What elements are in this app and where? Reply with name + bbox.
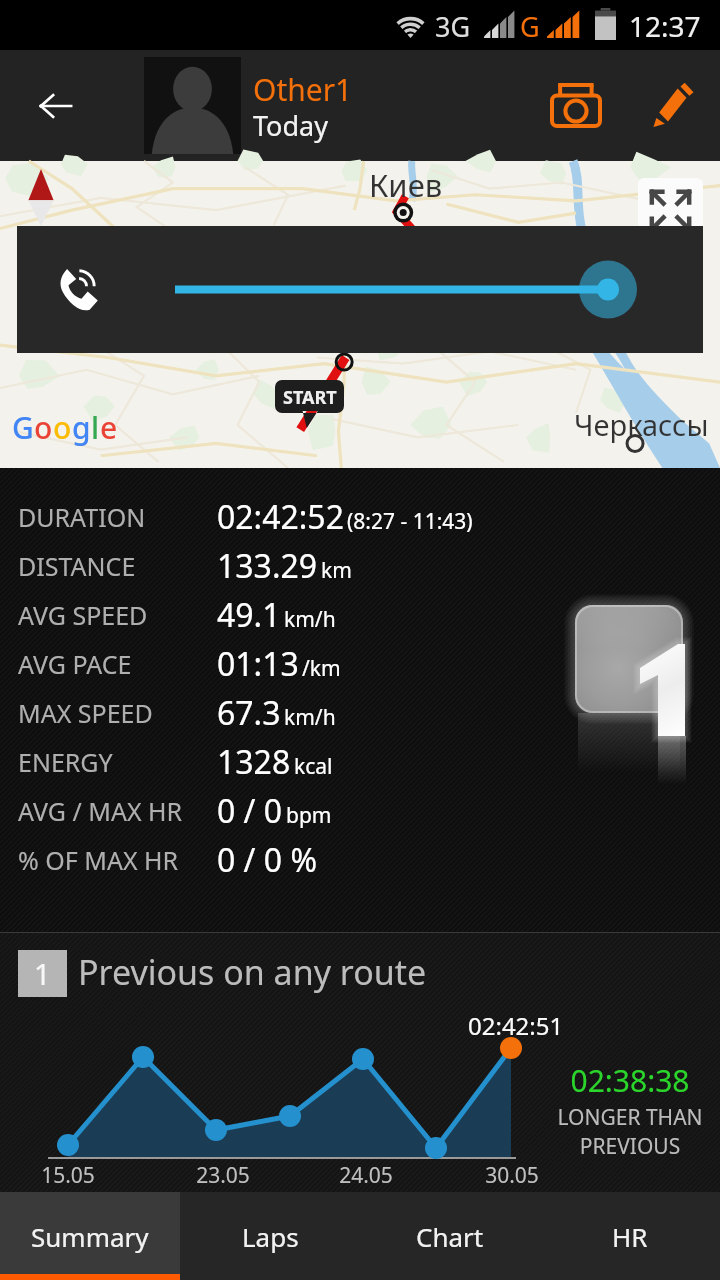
staticText: 67.3 — [217, 691, 281, 735]
staticText: Киев — [369, 164, 443, 206]
button[interactable]: Edit — [628, 50, 720, 161]
staticText: Other1 — [253, 69, 353, 110]
staticText: MAX SPEED — [18, 696, 153, 730]
staticText: Черкассы — [574, 405, 709, 444]
staticText: g — [72, 407, 91, 448]
staticText: 1328 — [217, 740, 291, 784]
staticText: DURATION — [18, 500, 146, 534]
staticText: DISTANCE — [18, 549, 136, 583]
staticText: AVG / MAX HR — [18, 794, 183, 828]
staticText: G — [520, 8, 540, 45]
button[interactable]: Fullscreen — [638, 178, 703, 243]
staticText: 30.05 — [478, 1161, 546, 1190]
staticText: HR — [612, 1219, 648, 1254]
staticText: e — [100, 407, 118, 448]
staticText: 3G — [435, 8, 471, 45]
staticText: km/h — [284, 703, 336, 732]
staticText: 0 / 0 % — [217, 838, 318, 882]
staticText: Today — [253, 107, 328, 144]
staticText: AVG SPEED — [18, 598, 148, 632]
button[interactable]: Chart — [360, 1192, 540, 1280]
staticText: 01:13 — [217, 642, 299, 686]
staticText: o — [53, 407, 72, 448]
staticText: 02:42:51 — [468, 1009, 564, 1042]
staticText: AVG PACE — [18, 647, 132, 681]
staticText: 02:38:38 — [570, 1060, 690, 1101]
button[interactable]: Summary — [0, 1192, 180, 1280]
staticText: /km — [302, 654, 341, 683]
staticText: 24.05 — [332, 1161, 400, 1190]
staticText: o — [34, 407, 53, 448]
staticText: l — [91, 407, 100, 448]
staticText: kcal — [294, 752, 333, 781]
staticText: 49.1 — [217, 593, 281, 637]
staticText: Previous on any route — [78, 949, 427, 995]
staticText: km/h — [284, 605, 336, 634]
button[interactable]: Laps — [180, 1192, 360, 1280]
staticText: LONGER THAN — [557, 1103, 703, 1132]
button[interactable]: Camera — [528, 50, 624, 161]
staticText: % OF MAX HR — [18, 843, 179, 877]
staticText: Chart — [416, 1219, 484, 1254]
staticText: ENERGY — [18, 745, 113, 779]
staticText: (8:27 - 11:43) — [347, 507, 473, 536]
staticText: START — [283, 385, 337, 410]
staticText: PREVIOUS — [545, 1132, 715, 1161]
button[interactable]: Back — [0, 50, 112, 161]
staticText: bpm — [286, 801, 332, 830]
staticText: G — [12, 407, 34, 448]
staticText: Summary — [31, 1219, 149, 1254]
staticText: 12:37 — [629, 7, 701, 45]
staticText: Laps — [242, 1219, 299, 1254]
staticText: 15.05 — [34, 1161, 102, 1190]
staticText: 02:42:52 — [217, 495, 344, 539]
staticText: 23.05 — [189, 1161, 257, 1190]
staticText: 1 — [34, 954, 51, 993]
staticText: 133.29 — [217, 544, 318, 588]
staticText: km — [321, 556, 352, 585]
button[interactable]: HR — [540, 1192, 720, 1280]
staticText: 0 / 0 — [217, 789, 283, 833]
